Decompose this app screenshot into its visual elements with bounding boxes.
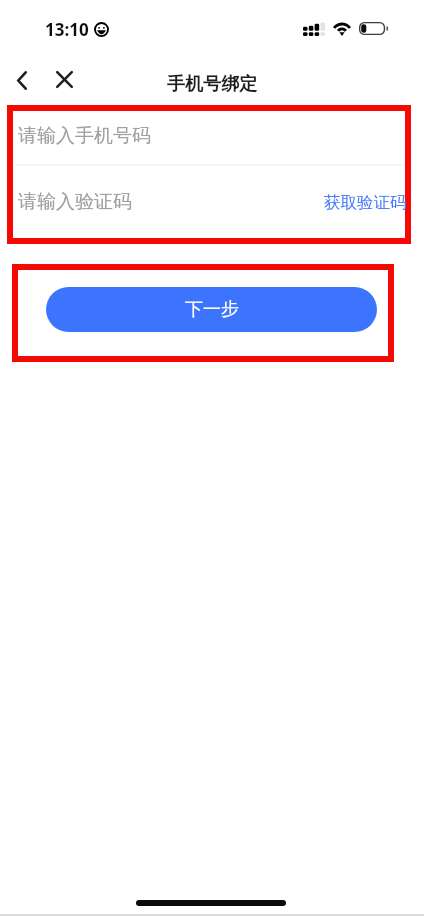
staticText: 下一步 [185,298,239,321]
staticText: 请输入验证码 [18,190,132,214]
staticText: 获取验证码 [324,192,407,213]
button[interactable]: Close [49,64,80,95]
staticText: 请输入手机号码 [18,124,151,148]
button[interactable]: 请输入手机号码 [13,111,405,164]
button[interactable]: Back [6,65,37,96]
staticText: 手机号绑定 [167,73,257,96]
staticText: 13:10 [45,18,89,41]
button[interactable]: 请输入验证码 [13,166,405,221]
button[interactable]: 下一步 [46,287,377,332]
button[interactable]: 获取验证码 [322,184,408,220]
